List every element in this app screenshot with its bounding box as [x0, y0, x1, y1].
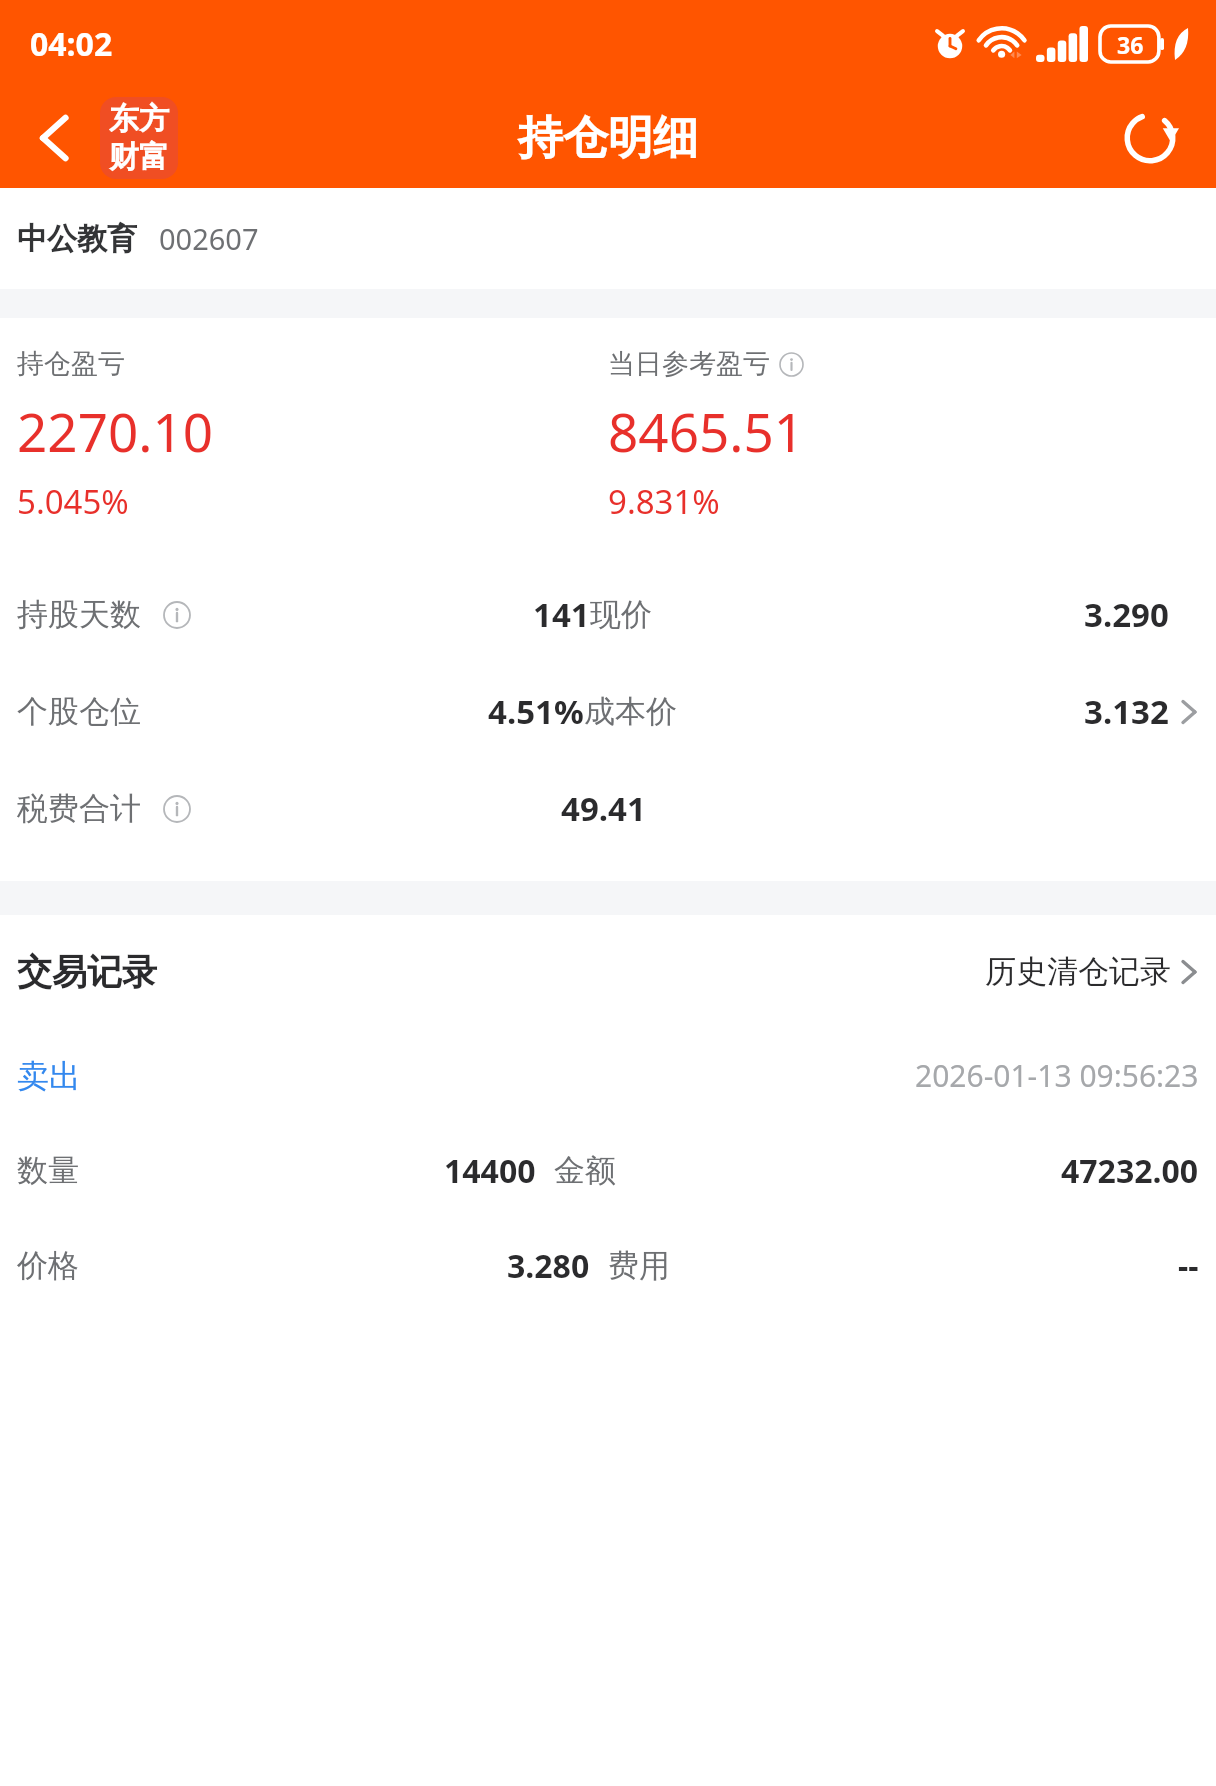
staticText: 数量 — [17, 1151, 79, 1190]
staticText: 9.831% — [608, 479, 720, 524]
staticText: 2270.10 — [17, 395, 214, 467]
staticText: 8465.51 — [608, 395, 805, 467]
staticText: 东方 — [109, 100, 169, 138]
staticText: 历史清仓记录 — [985, 952, 1171, 991]
button[interactable]: 历史清仓记录 — [985, 952, 1199, 991]
staticText: 持股天数 — [17, 595, 141, 634]
staticText: 47232.00 — [1061, 1149, 1199, 1193]
staticText: 持仓盈亏 — [17, 347, 125, 381]
staticText: 现价 — [590, 595, 652, 634]
staticText: 36 — [1117, 29, 1144, 60]
button[interactable]: 说明 — [163, 795, 191, 823]
staticText: 卖出 — [17, 1056, 81, 1096]
staticText: 持仓明细 — [518, 110, 698, 167]
staticText: 价格 — [17, 1246, 79, 1285]
staticText: 成本价 — [584, 692, 677, 731]
button[interactable]: 个股仓位 — [0, 663, 1216, 760]
staticText: 49.41 — [561, 786, 646, 831]
staticText: 财富 — [109, 138, 169, 176]
staticText: 个股仓位 — [17, 692, 141, 731]
staticText: 14400 — [444, 1149, 536, 1193]
staticText: 当日参考盈亏 — [608, 347, 770, 381]
staticText: 5.045% — [17, 479, 129, 524]
staticText: 费用 — [608, 1246, 670, 1285]
button[interactable]: 中公教育 — [0, 188, 1216, 289]
staticText: 税费合计 — [17, 789, 141, 828]
staticText: -- — [1178, 1244, 1199, 1288]
button[interactable]: 说明 — [779, 352, 804, 377]
staticText: 3.290 — [1084, 592, 1169, 637]
button[interactable]: 刷新 — [1114, 102, 1186, 174]
staticText: 141 — [533, 592, 590, 637]
staticText: 04:02 — [30, 22, 113, 66]
staticText: 金额 — [554, 1151, 616, 1190]
button[interactable]: 东方财富 — [100, 97, 178, 179]
button[interactable]: 返回 — [24, 107, 86, 169]
staticText: 中公教育 — [17, 220, 137, 258]
staticText: 002607 — [159, 219, 259, 258]
staticText: 3.132 — [1084, 689, 1169, 734]
staticText: 3.280 — [507, 1244, 590, 1288]
staticText: 交易记录 — [17, 950, 157, 994]
staticText: 2026-01-13 09:56:23 — [915, 1055, 1199, 1096]
button[interactable]: 说明 — [163, 601, 191, 629]
staticText: 4.51% — [488, 689, 584, 734]
